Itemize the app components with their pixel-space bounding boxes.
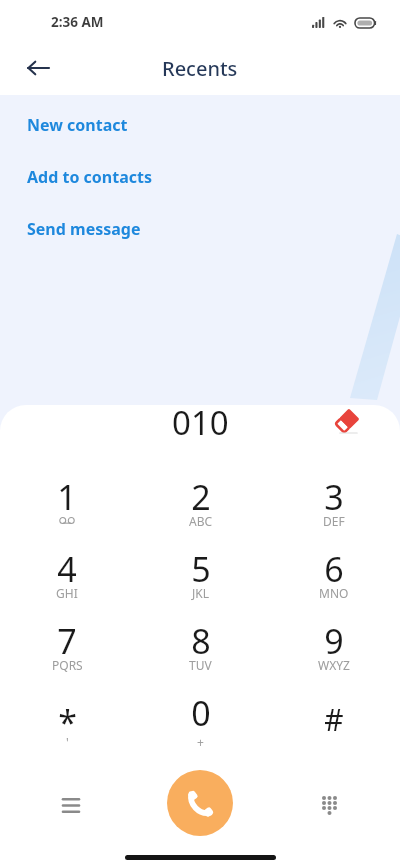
staticText: ABC bbox=[189, 513, 213, 529]
staticText: ' bbox=[66, 734, 69, 750]
staticText: New contact bbox=[27, 114, 128, 136]
staticText: 7 bbox=[57, 618, 77, 664]
staticText: * bbox=[58, 699, 77, 745]
staticText: 5 bbox=[191, 546, 211, 592]
button[interactable]: Back bbox=[20, 50, 56, 86]
staticText: 2 bbox=[191, 474, 211, 520]
button[interactable]: Call log bbox=[50, 785, 91, 826]
button[interactable]: 5 bbox=[134, 541, 267, 613]
staticText: WXYZ bbox=[318, 657, 350, 673]
button[interactable]: 8 bbox=[134, 613, 267, 685]
button[interactable]: 1 bbox=[0, 469, 134, 541]
staticText: GHI bbox=[56, 585, 78, 601]
button[interactable]: 3 bbox=[267, 469, 400, 541]
staticText: 6 bbox=[324, 546, 344, 592]
staticText: 010 bbox=[172, 400, 229, 445]
button[interactable]: 7 bbox=[0, 613, 134, 685]
button[interactable]: Send message bbox=[27, 215, 141, 243]
button[interactable]: New contact bbox=[27, 111, 128, 139]
staticText: 1 bbox=[57, 474, 77, 520]
staticText: 3 bbox=[324, 474, 344, 520]
button[interactable]: # bbox=[267, 685, 400, 757]
button[interactable]: Add to contacts bbox=[27, 163, 152, 191]
button[interactable]: 0 bbox=[134, 685, 267, 757]
button[interactable]: 9 bbox=[267, 613, 400, 685]
staticText: 0 bbox=[191, 690, 211, 736]
button[interactable]: 6 bbox=[267, 541, 400, 613]
button[interactable]: Dialpad bbox=[309, 785, 350, 826]
staticText: Send message bbox=[27, 218, 141, 240]
staticText: JKL bbox=[192, 585, 209, 601]
button[interactable]: 2 bbox=[134, 469, 267, 541]
button[interactable]: Backspace bbox=[327, 401, 367, 441]
staticText: 2:36 AM bbox=[51, 13, 104, 31]
staticText: + bbox=[197, 734, 204, 750]
button[interactable]: Call bbox=[167, 770, 233, 836]
staticText: 8 bbox=[191, 618, 211, 664]
staticText: 4 bbox=[57, 546, 77, 592]
staticText: MNO bbox=[319, 585, 349, 601]
staticText: PQRS bbox=[52, 657, 83, 673]
staticText: Recents bbox=[162, 55, 238, 82]
staticText: DEF bbox=[323, 513, 345, 529]
button[interactable]: * bbox=[0, 685, 134, 757]
staticText: TUV bbox=[189, 657, 212, 673]
staticText: # bbox=[324, 699, 344, 740]
button[interactable]: 4 bbox=[0, 541, 134, 613]
staticText: Add to contacts bbox=[27, 166, 152, 188]
staticText: 9 bbox=[324, 618, 344, 664]
